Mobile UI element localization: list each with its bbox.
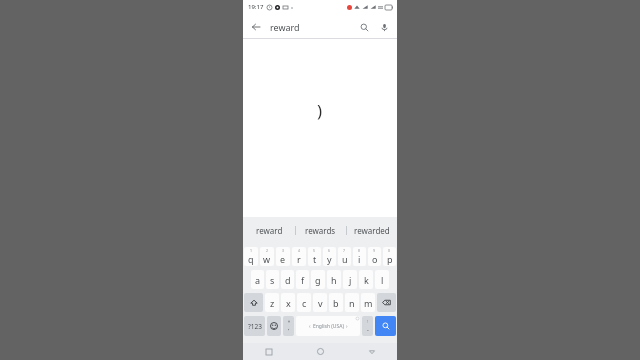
staticText: s	[270, 274, 275, 286]
button[interactable]: g	[311, 270, 325, 289]
staticText: e	[280, 253, 286, 265]
button[interactable]: n	[345, 293, 359, 312]
staticText: 9	[373, 248, 376, 253]
button[interactable]: 5	[308, 247, 321, 266]
staticText: ?123	[248, 322, 262, 331]
button[interactable]: m	[361, 293, 375, 312]
button[interactable]: Search	[354, 17, 374, 37]
staticText: !	[367, 319, 369, 324]
button[interactable]: Shift	[244, 293, 263, 312]
button[interactable]: 3	[276, 247, 290, 266]
button[interactable]: Voice search	[374, 17, 394, 37]
staticText: y	[327, 253, 332, 265]
staticText: n	[349, 297, 355, 309]
staticText: f	[301, 274, 305, 286]
staticText: rewarded	[354, 225, 390, 236]
button[interactable]: c	[297, 293, 311, 312]
button[interactable]: Search	[375, 316, 396, 336]
staticText: m	[364, 297, 373, 309]
button[interactable]: s	[266, 270, 279, 289]
button[interactable]: Space	[296, 316, 360, 336]
staticText: 3	[282, 248, 285, 253]
staticText: u	[342, 253, 348, 265]
button[interactable]: 8	[353, 247, 366, 266]
button[interactable]: z	[265, 293, 279, 312]
staticText: .	[367, 324, 369, 334]
staticText: i	[358, 253, 361, 265]
staticText: v	[318, 297, 323, 309]
staticText: k	[364, 274, 369, 286]
button[interactable]: ?123	[244, 316, 265, 336]
staticText: 19:17	[248, 3, 264, 11]
staticText: ›	[346, 323, 348, 330]
button[interactable]: Backspace	[377, 293, 396, 312]
button[interactable]: 2	[260, 247, 274, 266]
button[interactable]: x	[281, 293, 295, 312]
button[interactable]: rewarded	[346, 217, 397, 244]
button[interactable]: l	[375, 270, 389, 289]
button[interactable]: 6	[323, 247, 336, 266]
staticText: j	[349, 274, 352, 286]
button[interactable]: 0	[383, 247, 396, 266]
button[interactable]: a	[251, 270, 264, 289]
button[interactable]: 4	[292, 247, 306, 266]
staticText: b	[333, 297, 339, 309]
staticText: d	[285, 274, 291, 286]
staticText: 7	[343, 248, 346, 253]
button[interactable]: f	[296, 270, 309, 289]
staticText: r	[297, 253, 301, 265]
button[interactable]: 9	[368, 247, 381, 266]
staticText: English (USA)	[313, 323, 344, 330]
staticText: q	[248, 253, 254, 265]
button[interactable]: k	[359, 270, 373, 289]
button[interactable]: Back	[246, 17, 266, 37]
button[interactable]: d	[281, 270, 294, 289]
button[interactable]: b	[329, 293, 343, 312]
staticText: l	[381, 274, 384, 286]
staticText: 1	[250, 248, 253, 253]
button[interactable]: rewards	[295, 217, 346, 244]
button[interactable]: j	[343, 270, 357, 289]
staticText: z	[270, 297, 275, 309]
button[interactable]: h	[327, 270, 341, 289]
staticText: 0	[388, 248, 391, 253]
staticText: 8	[358, 248, 361, 253]
staticText: w	[263, 253, 271, 265]
button[interactable]: 1	[244, 247, 258, 266]
staticText: 4	[298, 248, 301, 253]
button[interactable]: Comma	[283, 316, 294, 336]
staticText: reward	[270, 21, 354, 33]
staticText: g	[315, 274, 321, 286]
staticText: t	[313, 253, 317, 265]
staticText: 2	[266, 248, 269, 253]
button[interactable]: Home	[295, 343, 346, 360]
staticText: h	[331, 274, 337, 286]
staticText: ,	[288, 324, 290, 332]
staticText: p	[387, 253, 393, 265]
button[interactable]: Recents	[243, 343, 295, 360]
staticText: )	[317, 99, 323, 122]
button[interactable]: Back	[346, 343, 397, 360]
button[interactable]: Period	[362, 316, 373, 336]
staticText: ‹	[309, 323, 311, 330]
staticText: 5	[313, 248, 316, 253]
staticText: o	[372, 253, 378, 265]
button[interactable]: reward	[243, 217, 295, 244]
button[interactable]: 7	[338, 247, 351, 266]
staticText: 6	[328, 248, 331, 253]
button[interactable]: Emoji	[267, 316, 281, 336]
button[interactable]: v	[313, 293, 327, 312]
staticText: x	[286, 297, 291, 309]
staticText: reward	[256, 225, 283, 236]
staticText: a	[255, 274, 261, 286]
staticText: c	[302, 297, 307, 309]
staticText: rewards	[305, 225, 336, 236]
